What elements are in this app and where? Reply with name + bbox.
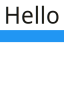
staticText: Hello: [4, 0, 60, 30]
